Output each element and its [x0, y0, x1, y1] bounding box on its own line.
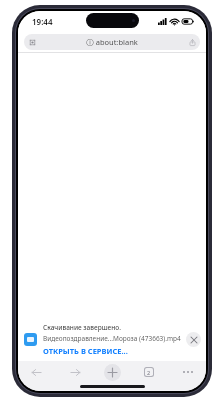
button[interactable]: New tab [104, 364, 121, 381]
button[interactable]: Forward [65, 362, 85, 382]
button[interactable]: Share [184, 34, 200, 50]
button[interactable]: Back [26, 362, 46, 382]
button[interactable]: More options [178, 362, 198, 382]
staticText: 2 [147, 369, 151, 376]
button[interactable]: Page settings [24, 34, 40, 50]
staticText: 19:44 [32, 16, 53, 27]
staticText: Видеопоздравление...Мороза (473663).mp4 [43, 334, 181, 343]
staticText: Скачивание завершено. [43, 323, 121, 332]
staticText: ОТКРЫТЬ В СЕРВИСЕ... [43, 346, 128, 356]
button[interactable]: Tabs [139, 362, 159, 382]
button[interactable]: ОТКРЫТЬ В СЕРВИСЕ... [43, 346, 128, 356]
button[interactable]: Close [186, 332, 201, 347]
staticText: ⓘ about:blank [40, 37, 184, 47]
